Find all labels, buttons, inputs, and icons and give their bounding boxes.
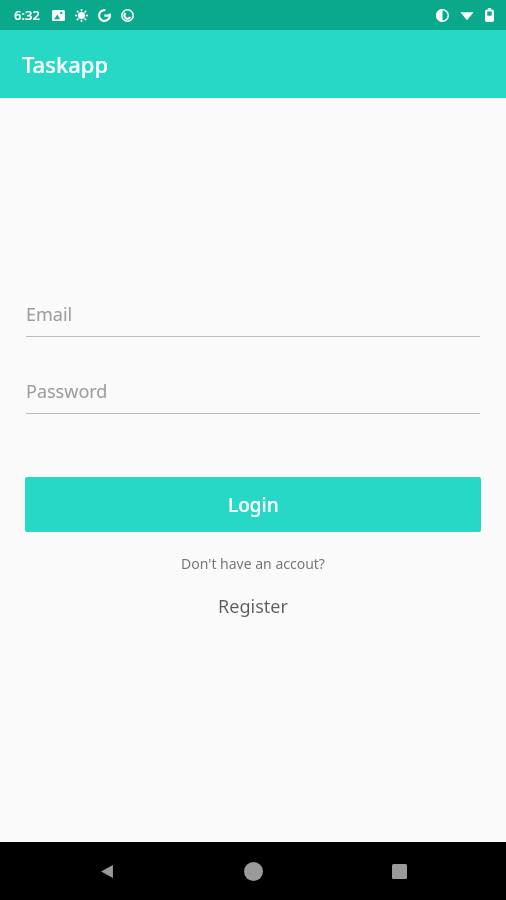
button[interactable]: Login: [25, 477, 481, 532]
button[interactable]: Home: [230, 848, 276, 894]
button[interactable]: Email: [26, 298, 480, 337]
staticText: Taskapp: [22, 49, 109, 79]
staticText: Don't have an accout?: [0, 554, 506, 573]
staticText: 6:32: [14, 6, 40, 24]
staticText: Password: [26, 379, 108, 404]
button[interactable]: Register: [0, 594, 506, 619]
staticText: Register: [218, 594, 288, 619]
button[interactable]: Back: [84, 848, 130, 894]
staticText: Email: [26, 302, 73, 327]
staticText: Login: [228, 492, 279, 518]
button[interactable]: Password: [26, 375, 480, 414]
button[interactable]: Recent apps: [376, 848, 422, 894]
